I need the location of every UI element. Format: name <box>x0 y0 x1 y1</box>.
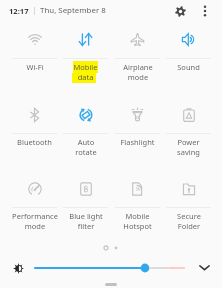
staticText: Power saving <box>177 137 200 157</box>
button[interactable]: More options <box>196 2 214 20</box>
staticText: Wi-Fi <box>26 62 44 72</box>
button[interactable]: Sound <box>163 25 214 100</box>
button[interactable]: Performance mode <box>9 174 60 249</box>
staticText: Thu, September 8 <box>40 5 106 16</box>
button[interactable]: Blue light filter <box>60 174 111 249</box>
staticText: Bluetooth <box>17 137 52 147</box>
button[interactable]: Auto rotate <box>60 100 111 175</box>
button[interactable]: Wi-Fi <box>9 25 60 100</box>
button[interactable]: Bluetooth <box>9 100 60 175</box>
button[interactable]: Drag handle <box>105 283 117 286</box>
staticText: Performance mode <box>12 211 58 231</box>
staticText: Sound <box>177 62 200 72</box>
staticText: Auto rotate <box>75 137 97 157</box>
button[interactable]: Expand <box>195 258 213 276</box>
staticText: Blue light filter <box>69 211 103 231</box>
button[interactable]: Mobile data <box>60 25 111 100</box>
staticText: Mobile Hotspot <box>123 211 152 231</box>
button[interactable]: Settings <box>170 1 190 21</box>
button[interactable]: Power saving <box>163 100 214 175</box>
staticText: Flashlight <box>120 137 155 147</box>
button[interactable]: Brightness slider <box>34 260 185 276</box>
staticText: Mobile data <box>73 62 98 82</box>
button[interactable]: Secure Folder <box>163 174 214 249</box>
staticText: Secure Folder <box>177 211 201 231</box>
button[interactable]: Flashlight <box>112 100 163 175</box>
button[interactable]: Airplane mode <box>112 25 163 100</box>
staticText: 12:17 <box>9 6 29 16</box>
staticText: Airplane mode <box>123 62 153 82</box>
button[interactable]: Mobile Hotspot <box>112 174 163 249</box>
button[interactable]: Brightness <box>9 259 28 278</box>
